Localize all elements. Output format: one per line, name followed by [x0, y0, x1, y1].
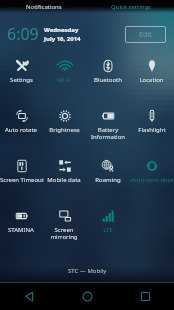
button[interactable]: Home [58, 283, 116, 310]
staticText: Brightness [49, 126, 80, 134]
button[interactable]: Quick settings [87, 0, 174, 14]
button[interactable]: Roaming [86, 154, 130, 204]
staticText: Screen Timeout [0, 176, 44, 184]
staticText: Edit [139, 30, 152, 40]
staticText: July 16, 2014 [44, 35, 81, 43]
button[interactable]: Back [0, 283, 58, 310]
staticText: Notifications [26, 3, 62, 11]
button[interactable]: Brightness [43, 104, 86, 154]
button[interactable]: Settings [0, 54, 43, 104]
button[interactable]: Notifications [0, 0, 87, 14]
staticText: Auto rotate [5, 126, 37, 134]
button[interactable]: Mobile data [43, 154, 86, 204]
button[interactable]: Edit [125, 26, 166, 43]
button[interactable]: Auto-sync data [130, 154, 174, 204]
staticText: Roaming [95, 176, 121, 184]
staticText: Wi-Fi [57, 76, 71, 84]
staticText: Bluetooth [94, 76, 122, 84]
staticText: Battery Information [91, 126, 125, 141]
staticText: Quick settings [111, 3, 151, 11]
button[interactable]: Battery Information [86, 104, 130, 154]
staticText: STC — Mobily [68, 267, 107, 275]
button[interactable]: Location [130, 54, 174, 104]
button[interactable]: Flashlight [130, 104, 174, 154]
staticText: Mobile data [47, 176, 81, 184]
button[interactable]: Screen Timeout [0, 154, 43, 204]
button[interactable]: Bluetooth [86, 54, 130, 104]
staticText: 6:09 [7, 23, 39, 45]
button[interactable]: Screen mirroring [43, 204, 86, 254]
staticText: STAMINA [8, 226, 34, 234]
button[interactable]: STAMINA [0, 204, 43, 254]
button[interactable]: Auto rotate [0, 104, 43, 154]
button[interactable]: Wi-Fi [43, 54, 86, 104]
staticText: Wednesday [44, 26, 79, 34]
staticText: Auto-sync data [131, 176, 173, 184]
staticText: LTE [103, 226, 113, 234]
staticText: Location [139, 76, 164, 84]
staticText: Screen mirroring [50, 226, 78, 241]
staticText: Flashlight [138, 126, 166, 134]
button[interactable]: LTE [86, 204, 130, 254]
staticText: Settings [10, 76, 33, 84]
button[interactable]: Recent apps [116, 283, 174, 310]
button[interactable] [130, 204, 174, 254]
